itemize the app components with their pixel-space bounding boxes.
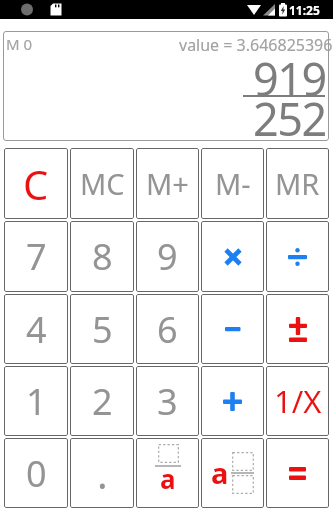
staticText: M+ [146,164,189,203]
button[interactable]: 9 [136,221,199,292]
staticText: 252 [253,88,326,149]
staticText: 11:25 [289,2,320,18]
staticText: 1 [26,377,47,426]
button[interactable]: C [4,148,68,219]
button[interactable]: 5 [70,294,134,364]
button[interactable] [266,438,329,508]
button[interactable] [201,294,264,364]
staticText: 3 [157,377,178,426]
staticText: M 0 [6,34,33,54]
button[interactable]: 1/X [266,366,329,436]
staticText: 2 [92,377,113,426]
staticText: M- [215,164,251,203]
staticText: 4 [26,305,47,354]
staticText: 1/X [274,380,322,422]
button[interactable] [266,294,329,364]
button[interactable]: 2 [70,366,134,436]
staticText: 919 [253,48,326,109]
staticText: C [23,157,49,211]
button[interactable]: M+ [136,148,199,219]
staticText: . [97,446,108,500]
button[interactable]: 0 [4,438,68,508]
button[interactable]: 7 [4,221,68,292]
button[interactable]: M- [201,148,264,219]
staticText: MR [275,164,320,203]
staticText: MC [80,164,125,203]
button[interactable]: MR [266,148,329,219]
staticText: value = 3.6468253968 [179,34,333,56]
button[interactable]: MC [70,148,134,219]
button[interactable]: 1 [4,366,68,436]
button[interactable] [201,221,264,292]
staticText: 6 [157,305,178,354]
button[interactable]: a [201,438,264,508]
button[interactable]: . [70,438,134,508]
staticText: a [211,453,229,492]
button[interactable] [266,221,329,292]
staticText: 7 [26,232,47,281]
button[interactable]: 8 [70,221,134,292]
staticText: 0 [26,449,47,498]
staticText: 8 [92,232,113,281]
button[interactable] [201,366,264,436]
button[interactable]: 6 [136,294,199,364]
staticText: 9 [157,232,178,281]
button[interactable]: a [136,438,199,508]
button[interactable]: 3 [136,366,199,436]
staticText: a [160,461,176,496]
staticText: 5 [92,305,113,354]
button[interactable]: 4 [4,294,68,364]
